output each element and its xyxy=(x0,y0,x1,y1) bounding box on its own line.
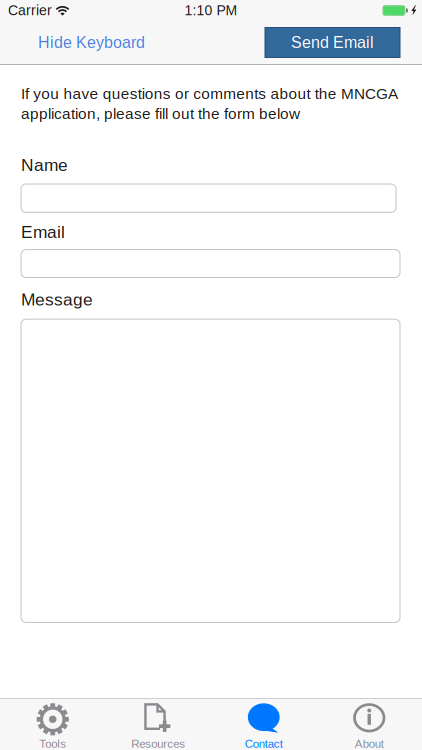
staticText: have xyxy=(63,85,98,102)
staticText: Tools xyxy=(39,737,66,750)
staticText: Email xyxy=(21,222,65,242)
staticText: or xyxy=(175,85,189,102)
button[interactable]: Resources xyxy=(105,699,211,750)
staticText: questions xyxy=(103,85,171,102)
button[interactable]: About xyxy=(316,699,422,750)
staticText: about xyxy=(270,85,310,102)
staticText: About xyxy=(355,737,384,750)
staticText: comments xyxy=(193,85,266,102)
staticText: Send Email xyxy=(291,34,374,51)
button[interactable]: Tools xyxy=(0,699,105,750)
staticText: 1:10 PM xyxy=(184,3,237,18)
staticText: application, please fill out the form be… xyxy=(21,105,300,122)
staticText: Contact xyxy=(245,737,283,750)
button[interactable]: Hide Keyboard xyxy=(28,26,155,58)
staticText: Resources xyxy=(131,737,185,750)
staticText: you xyxy=(33,85,59,102)
staticText: If xyxy=(21,85,29,102)
staticText: MNCGA xyxy=(341,85,398,102)
staticText: Hide Keyboard xyxy=(38,34,145,51)
staticText: Carrier xyxy=(8,3,52,18)
staticText: the xyxy=(315,85,337,102)
staticText: Message xyxy=(21,290,93,309)
button[interactable]: Contact xyxy=(211,699,316,750)
staticText: Name xyxy=(21,155,68,175)
button[interactable]: Send Email xyxy=(265,27,400,57)
